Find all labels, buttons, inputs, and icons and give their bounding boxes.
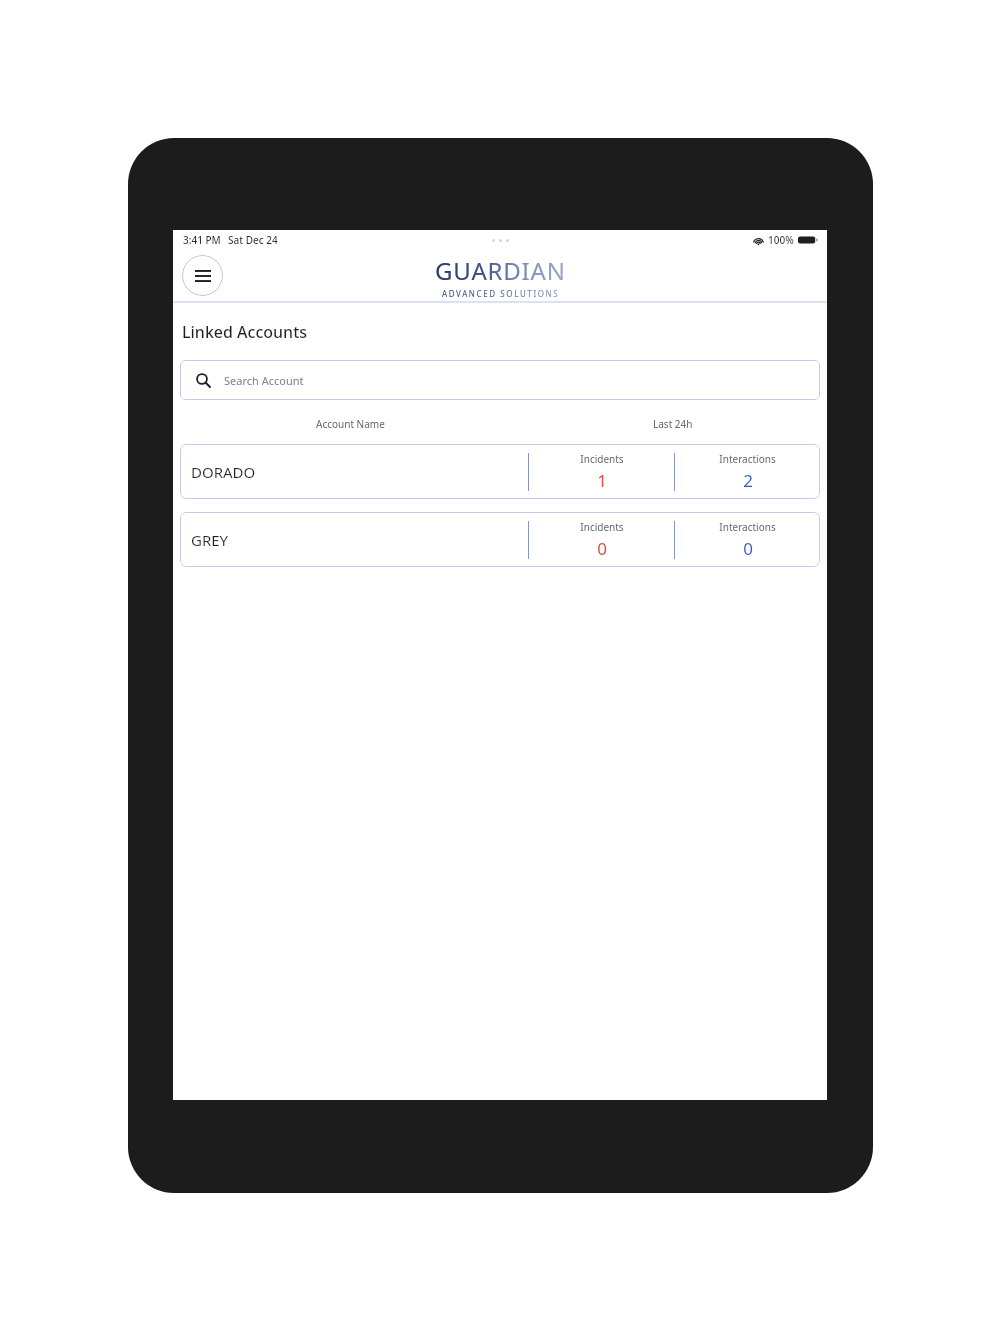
staticText: Sat Dec 24 <box>228 233 278 247</box>
button[interactable]: DORADO <box>180 444 820 499</box>
staticText: 0 <box>597 537 607 560</box>
staticText: Interactions <box>719 520 776 534</box>
staticText: Last 24h <box>653 417 693 431</box>
staticText: 100% <box>768 233 794 247</box>
staticText: 3:41 PM <box>183 233 221 247</box>
staticText: Account Name <box>316 417 385 431</box>
staticText: Interactions <box>719 452 776 466</box>
staticText: GREY <box>191 530 229 550</box>
staticText: 1 <box>597 469 607 492</box>
button[interactable]: Search Account <box>180 360 820 400</box>
button[interactable]: GREY <box>180 512 820 567</box>
staticText: 2 <box>743 469 753 492</box>
staticText: Linked Accounts <box>182 321 308 343</box>
staticText: Incidents <box>580 520 624 534</box>
staticText: DORADO <box>191 462 256 482</box>
staticText: ADVANCED SOLUTIONS <box>442 288 560 299</box>
staticText: Incidents <box>580 452 624 466</box>
staticText: Search Account <box>224 373 304 388</box>
button[interactable]: Menu <box>182 255 223 296</box>
staticText: 0 <box>743 537 753 560</box>
staticText: GUARDIAN <box>435 254 566 287</box>
